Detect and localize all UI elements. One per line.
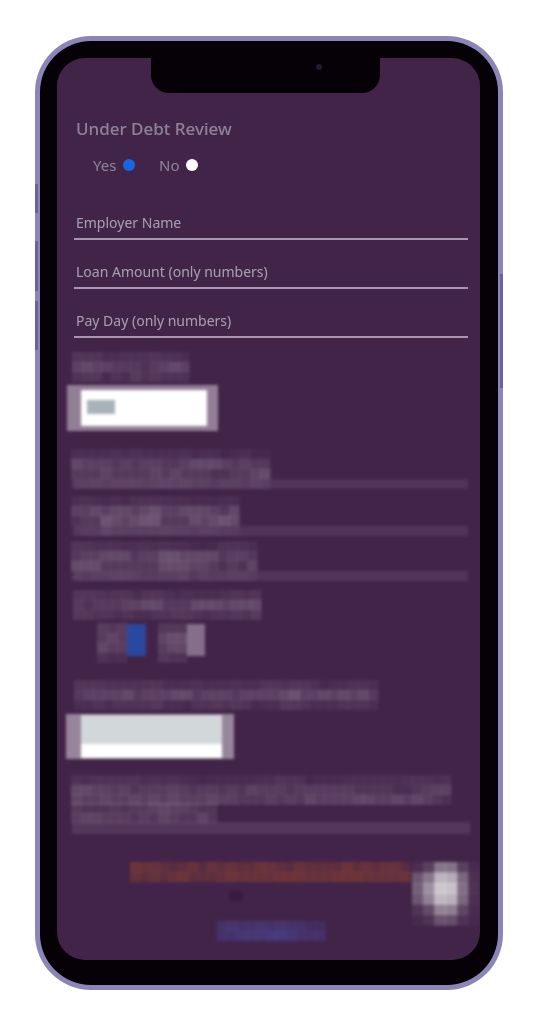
button[interactable]: Pay Day (only numbers): [74, 310, 468, 350]
staticText: Employer Name: [76, 213, 182, 232]
staticText: Under Debt Review: [76, 117, 232, 140]
staticText: Loan Amount (only numbers): [76, 262, 268, 281]
staticText: Yes: [93, 155, 117, 175]
staticText: Pay Day (only numbers): [76, 311, 232, 330]
button[interactable]: No: [159, 155, 198, 175]
button[interactable]: [187, 624, 205, 656]
button[interactable]: [67, 385, 218, 431]
staticText: No: [159, 155, 180, 175]
button[interactable]: Captcha: [412, 862, 479, 928]
button[interactable]: [127, 624, 146, 656]
button[interactable]: [66, 714, 234, 759]
button[interactable]: Loan Amount (only numbers): [74, 261, 468, 301]
button[interactable]: Yes: [93, 155, 135, 175]
button[interactable]: [71, 449, 467, 493]
button[interactable]: [71, 496, 467, 540]
button[interactable]: Employer Name: [74, 212, 468, 252]
button[interactable]: [71, 541, 467, 585]
